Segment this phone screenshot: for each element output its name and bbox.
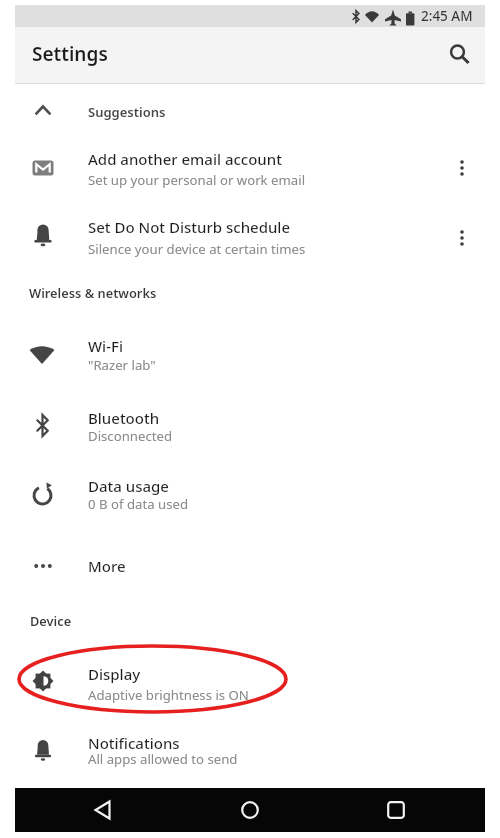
button[interactable] xyxy=(228,788,272,832)
staticText: Settings xyxy=(32,41,108,67)
staticText: More xyxy=(88,556,126,576)
staticText: Adaptive brightness is ON xyxy=(88,686,249,704)
staticText: Silence your device at certain times xyxy=(88,240,306,258)
staticText: 2:45 AM xyxy=(421,7,473,25)
staticText: Data usage xyxy=(88,476,169,496)
button[interactable]: Add another email account xyxy=(15,134,485,202)
staticText: Wireless & networks xyxy=(29,284,157,301)
staticText: Disconnected xyxy=(88,427,173,445)
button[interactable]: Bluetooth xyxy=(15,392,485,460)
staticText: "Razer lab" xyxy=(88,356,156,374)
staticText: Add another email account xyxy=(88,149,282,169)
staticText: Set up your personal or work email xyxy=(88,171,306,189)
staticText: Device xyxy=(30,612,72,629)
button[interactable]: Wi-Fi xyxy=(15,322,485,390)
button[interactable] xyxy=(374,788,418,832)
staticText: Notifications xyxy=(88,733,180,753)
staticText: All apps allowed to send xyxy=(88,750,238,768)
staticText: Display xyxy=(88,664,141,684)
button[interactable] xyxy=(443,38,475,70)
button[interactable]: Notifications xyxy=(15,717,485,785)
staticText: Wi-Fi xyxy=(88,336,123,356)
staticText: Set Do Not Disturb schedule xyxy=(88,217,291,237)
button[interactable]: Suggestions xyxy=(15,92,485,130)
button[interactable]: Set Do Not Disturb schedule xyxy=(15,204,485,272)
staticText: 0 B of data used xyxy=(88,495,189,513)
button[interactable]: Display xyxy=(15,647,485,715)
button[interactable]: More xyxy=(15,532,485,600)
staticText: Bluetooth xyxy=(88,408,160,428)
button[interactable]: Data usage xyxy=(15,462,485,530)
staticText: Suggestions xyxy=(88,103,166,121)
button[interactable] xyxy=(81,788,125,832)
